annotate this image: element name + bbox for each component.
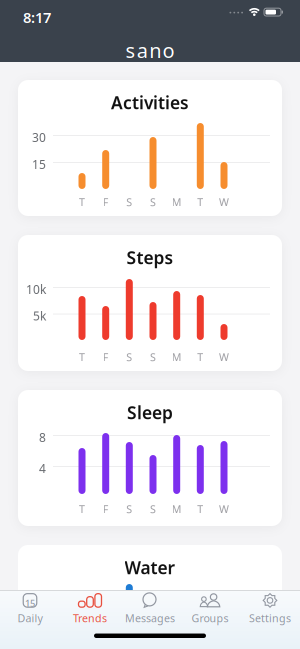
staticText: S	[126, 502, 132, 516]
button[interactable]: 15	[0, 592, 60, 626]
staticText: T	[197, 502, 203, 516]
staticText: T	[79, 502, 85, 516]
staticText: Settings	[249, 611, 291, 625]
staticText: M	[172, 195, 182, 209]
staticText: Messages	[125, 611, 175, 625]
button[interactable]: Trends	[60, 592, 120, 626]
staticText: W	[219, 350, 229, 364]
staticText: S	[150, 350, 156, 364]
staticText: 4	[39, 460, 46, 476]
staticText: s	[125, 37, 135, 64]
staticText: T	[79, 350, 85, 364]
staticText: W	[219, 502, 229, 516]
staticText: W	[219, 195, 229, 209]
staticText: Steps	[126, 246, 173, 269]
staticText: F	[103, 350, 109, 364]
staticText: S	[150, 502, 156, 516]
staticText: Sleep	[127, 401, 173, 424]
staticText: Trends	[73, 611, 107, 625]
button[interactable]: Sleep	[18, 390, 282, 526]
staticText: F	[103, 502, 109, 516]
staticText: M	[172, 350, 182, 364]
staticText: 5k	[33, 308, 46, 324]
button[interactable]: Settings	[240, 592, 300, 626]
staticText: o	[163, 37, 175, 64]
staticText: Daily	[17, 611, 42, 625]
staticText: T	[79, 195, 85, 209]
staticText: S	[126, 350, 132, 364]
staticText: 15	[32, 156, 46, 172]
staticText: T	[197, 195, 203, 209]
staticText: Activities	[111, 91, 189, 114]
staticText: 10k	[26, 281, 46, 297]
staticText: S	[150, 195, 156, 209]
button[interactable]: Groups	[180, 592, 240, 626]
staticText: 8	[39, 429, 46, 445]
staticText: F	[103, 195, 109, 209]
button[interactable]: Messages	[120, 592, 180, 626]
staticText: 30	[32, 129, 46, 145]
staticText: Groups	[191, 611, 228, 625]
staticText: n	[149, 37, 161, 64]
staticText: 8:17	[23, 7, 51, 27]
button[interactable]: Water	[18, 545, 282, 649]
staticText: Water	[124, 556, 175, 579]
staticText: M	[172, 502, 182, 516]
staticText: T	[197, 350, 203, 364]
staticText: a	[137, 37, 148, 64]
staticText: 15	[25, 597, 35, 609]
staticText: S	[126, 195, 132, 209]
button[interactable]: Steps	[18, 235, 282, 371]
button[interactable]: Activities	[18, 80, 282, 216]
